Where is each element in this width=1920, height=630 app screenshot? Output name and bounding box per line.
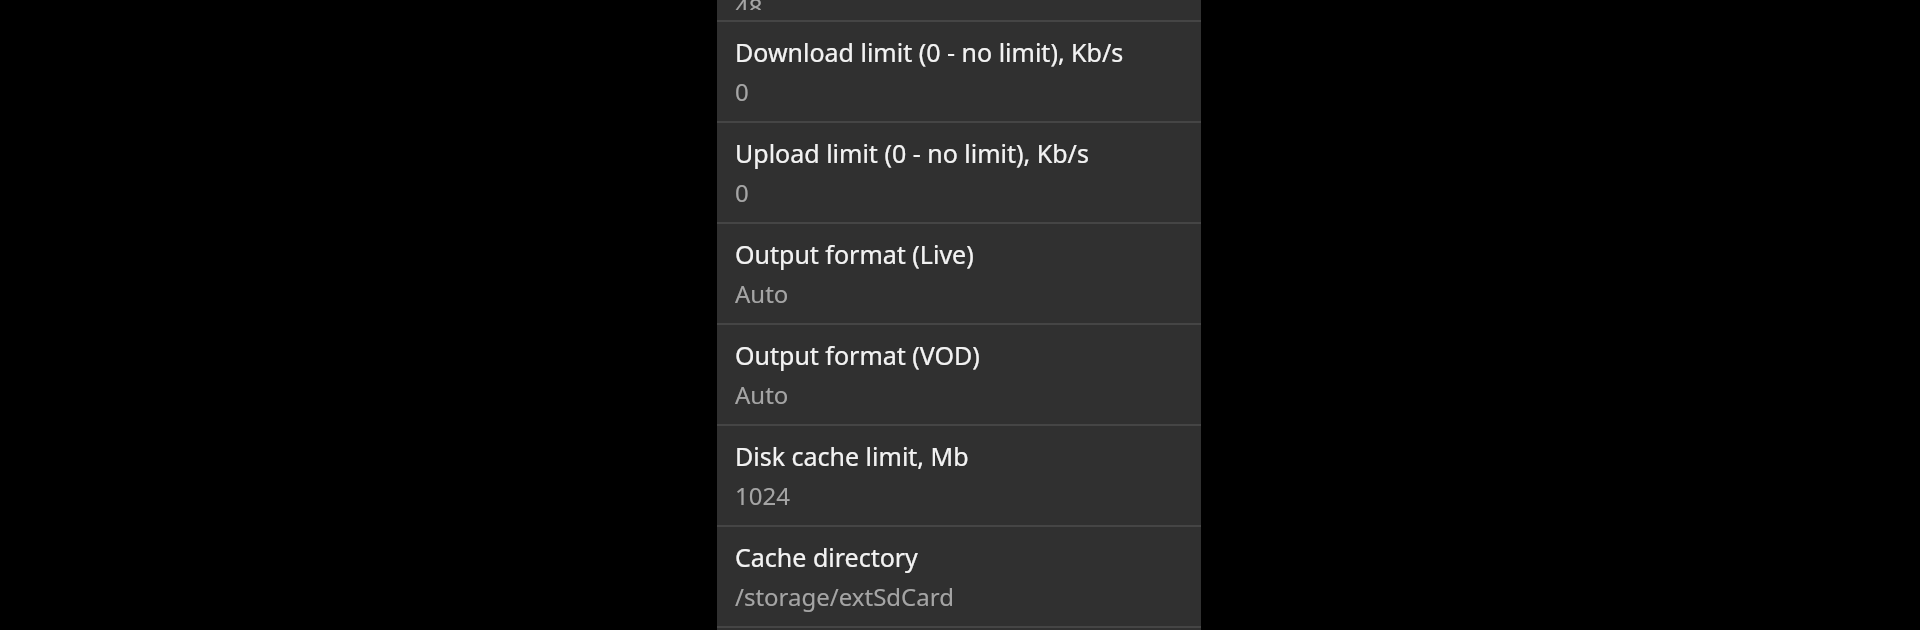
- staticText: 0: [735, 176, 749, 209]
- button[interactable]: Cache directory: [717, 527, 1201, 626]
- button[interactable]: Disk cache limit, Mb: [717, 426, 1201, 525]
- button[interactable]: Output format (VOD): [717, 325, 1201, 424]
- staticText: 48: [735, 0, 763, 10]
- staticText: Upload limit (0 - no limit), Kb/s: [735, 136, 1089, 170]
- staticText: Auto: [735, 378, 789, 411]
- staticText: Download limit (0 - no limit), Kb/s: [735, 35, 1124, 69]
- staticText: Cache directory: [735, 540, 918, 574]
- staticText: Auto: [735, 277, 789, 310]
- staticText: /storage/extSdCard: [735, 580, 954, 613]
- button[interactable]: 48: [717, 0, 1201, 20]
- button[interactable]: Upload limit (0 - no limit), Kb/s: [717, 123, 1201, 222]
- staticText: 0: [735, 75, 749, 108]
- button[interactable]: Download limit (0 - no limit), Kb/s: [717, 22, 1201, 121]
- button[interactable]: Output format (Live): [717, 224, 1201, 323]
- staticText: Output format (Live): [735, 237, 974, 271]
- staticText: Disk cache limit, Mb: [735, 439, 969, 473]
- staticText: Output format (VOD): [735, 338, 980, 372]
- staticText: 1024: [735, 479, 790, 512]
